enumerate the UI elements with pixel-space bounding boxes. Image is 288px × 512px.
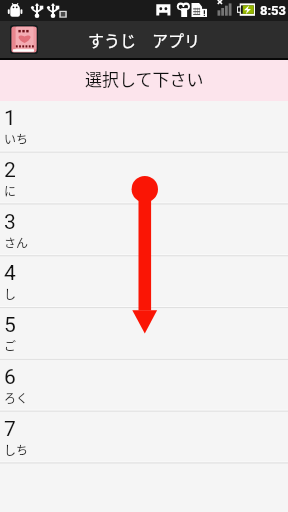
staticText: 選択して下さい (85, 66, 204, 91)
button[interactable]: 2 (0, 153, 288, 205)
button[interactable]: 3 (0, 205, 288, 257)
staticText: し (4, 285, 17, 302)
staticText: 7 (4, 417, 16, 442)
button[interactable]: 7 (0, 412, 288, 464)
staticText: 2 (4, 158, 16, 183)
button[interactable]: 6 (0, 360, 288, 412)
staticText: 3 (4, 210, 16, 235)
button[interactable]: 4 (0, 256, 288, 308)
button[interactable]: 5 (0, 308, 288, 360)
staticText: さん (4, 234, 29, 251)
staticText: 4 (4, 261, 16, 286)
staticText: すうじ アプリ (88, 28, 201, 51)
staticText: 1 (4, 106, 16, 131)
staticText: いち (4, 130, 29, 147)
button[interactable]: App icon (10, 25, 38, 54)
button[interactable]: 1 (0, 101, 288, 153)
staticText: 5 (4, 313, 16, 338)
staticText: しち (4, 441, 29, 458)
staticText: ご (4, 337, 17, 354)
staticText: 8:53 (260, 3, 287, 18)
staticText: 6 (4, 365, 16, 390)
staticText: ろく (4, 389, 29, 406)
staticText: に (4, 182, 17, 199)
